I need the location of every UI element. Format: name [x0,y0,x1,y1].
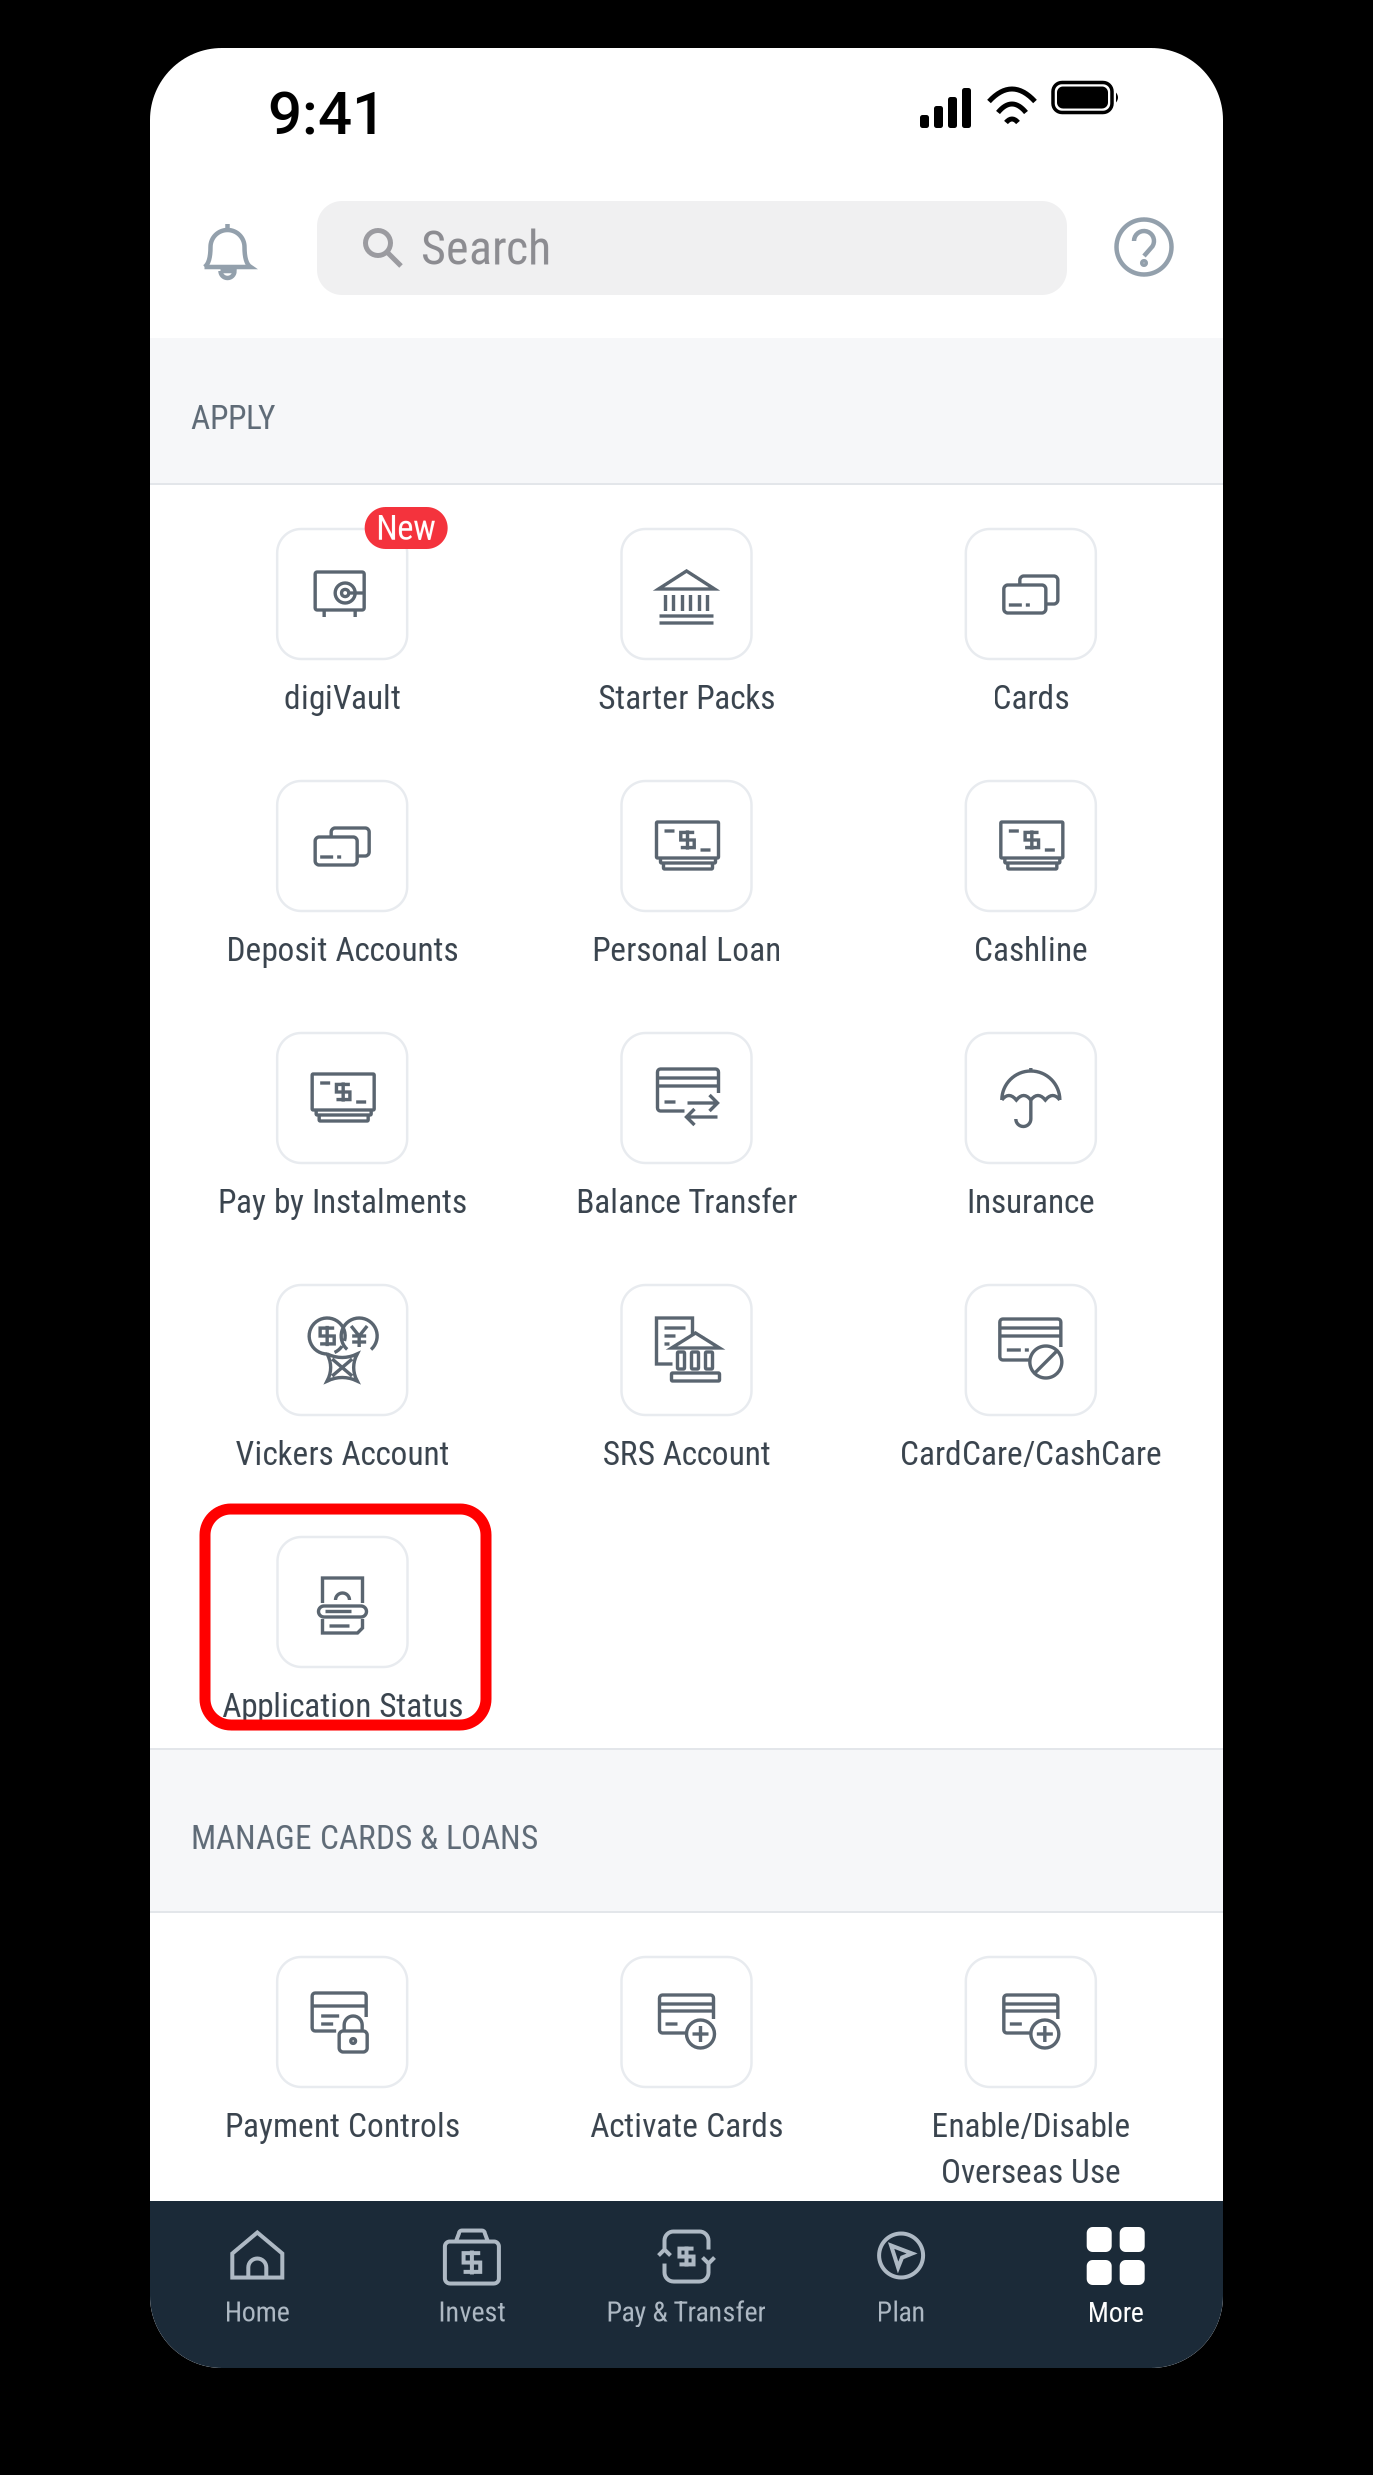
button[interactable]: Cashline [859,781,1203,1033]
staticText: Search [421,220,551,276]
staticText: CardCare/CashCare [900,1434,1162,1473]
staticText: Cashline [974,930,1088,969]
button[interactable]: Application Status [170,1537,515,1748]
button[interactable]: Home [150,2227,365,2328]
staticText: More [1088,2296,1144,2329]
button[interactable]: Insurance [859,1033,1203,1285]
staticText: Balance Transfer [576,1182,797,1221]
staticText: Plan [877,2295,926,2328]
button[interactable]: Payment Controls [170,1957,514,2204]
staticText: 9:41 [268,78,386,149]
staticText: Home [225,2295,290,2328]
staticText: Application Status [222,1686,463,1725]
button[interactable]: Pay by Instalments [170,1033,514,1285]
button[interactable]: Activate Cards [514,1957,859,2204]
button[interactable]: Cards [859,529,1203,781]
button[interactable]: CardCare/CashCare [859,1285,1203,1537]
staticText: Pay by Instalments [218,1182,467,1221]
staticText: Personal Loan [592,930,781,969]
button[interactable]: Starter Packs [514,529,859,781]
button[interactable]: Invest [365,2227,579,2328]
button[interactable]: Enable/Disable Overseas Use [859,1957,1203,2204]
staticText: Enable/Disable Overseas Use [931,2106,1130,2191]
button[interactable]: New [170,529,514,781]
staticText: Payment Controls [225,2106,460,2145]
staticText: Invest [438,2295,505,2328]
button[interactable]: Vickers Account [170,1285,514,1537]
button[interactable]: Deposit Accounts [170,781,514,1033]
staticText: Deposit Accounts [226,930,458,969]
button[interactable]: Search [317,201,1067,295]
button[interactable]: Help [1067,192,1223,304]
staticText: Vickers Account [235,1434,449,1473]
button[interactable]: More [1008,2227,1223,2329]
button[interactable]: Balance Transfer [514,1033,859,1285]
staticText: SRS Account [602,1434,770,1473]
staticText: MANAGE CARDS & LOANS [191,1818,538,1857]
button[interactable]: SRS Account [514,1285,859,1537]
staticText: Cards [992,678,1069,717]
staticText: APPLY [191,398,275,437]
button[interactable]: Personal Loan [514,781,859,1033]
staticText: Starter Packs [598,678,775,717]
button[interactable]: Pay & Transfer [579,2227,794,2328]
staticText: Pay & Transfer [606,2295,766,2328]
staticText: New [376,508,436,548]
staticText: Insurance [967,1182,1095,1221]
staticText: Activate Cards [590,2106,783,2145]
button[interactable]: Notifications [150,192,317,304]
button[interactable]: Plan [794,2227,1008,2328]
staticText: digiVault [284,678,401,717]
